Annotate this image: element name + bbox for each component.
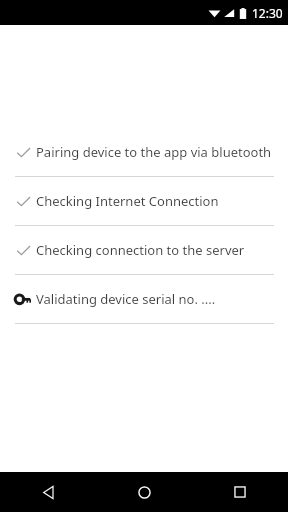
staticText: Checking connection to the server bbox=[36, 241, 245, 259]
button[interactable]: Validating device serial no. .... bbox=[0, 275, 288, 323]
staticText: Pairing device to the app via bluetooth bbox=[36, 143, 272, 161]
button[interactable]: Checking Internet Connection bbox=[0, 177, 288, 225]
button[interactable]: Checking connection to the server bbox=[0, 226, 288, 274]
button[interactable]: Home bbox=[96, 472, 192, 512]
staticText: Checking Internet Connection bbox=[36, 192, 219, 210]
button[interactable]: Back bbox=[0, 472, 96, 512]
button[interactable]: Pairing device to the app via bluetooth bbox=[0, 128, 288, 176]
staticText: Validating device serial no. .... bbox=[36, 290, 216, 308]
button[interactable]: Recent apps bbox=[192, 472, 288, 512]
staticText: 12:30 bbox=[252, 5, 283, 21]
